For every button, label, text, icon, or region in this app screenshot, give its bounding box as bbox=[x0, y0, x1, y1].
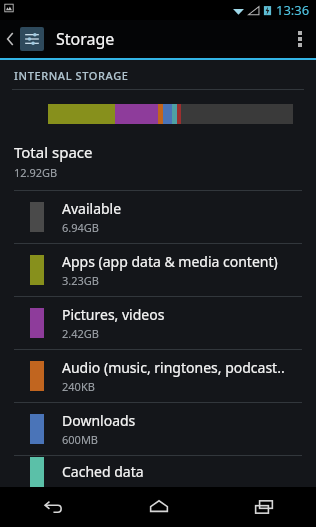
button[interactable]: Back bbox=[0, 20, 48, 58]
button[interactable]: Home bbox=[106, 487, 211, 527]
button[interactable]: Total space bbox=[0, 138, 316, 190]
staticText: Total space bbox=[14, 142, 93, 162]
staticText: Storage bbox=[56, 28, 115, 50]
staticText: 240KB bbox=[62, 379, 95, 394]
staticText: Downloads bbox=[62, 411, 136, 430]
other: Back bbox=[6, 31, 15, 47]
button[interactable]: Recent apps bbox=[211, 487, 316, 527]
button[interactable]: Cached data bbox=[0, 456, 316, 487]
staticText: 12.92GB bbox=[14, 165, 58, 180]
staticText: Pictures, videos bbox=[62, 305, 165, 324]
button[interactable]: More options bbox=[284, 20, 316, 58]
staticText: 600MB bbox=[62, 432, 99, 447]
staticText: Available bbox=[62, 199, 122, 218]
staticText: 3.23GB bbox=[62, 273, 99, 288]
staticText: 13:36 bbox=[276, 1, 310, 19]
button[interactable]: Pictures, videos bbox=[0, 297, 316, 349]
button[interactable]: Available bbox=[0, 191, 316, 243]
staticText: Apps (app data & media content) bbox=[62, 252, 278, 271]
button[interactable]: Back bbox=[0, 487, 106, 527]
staticText: Cached data bbox=[62, 462, 144, 481]
staticText: Audio (music, ringtones, podcast.. bbox=[62, 358, 285, 377]
button[interactable]: Apps (app data & media content) bbox=[0, 244, 316, 296]
button[interactable]: Audio (music, ringtones, podcast.. bbox=[0, 350, 316, 402]
staticText: 2.42GB bbox=[62, 326, 99, 341]
button[interactable]: Downloads bbox=[0, 403, 316, 455]
staticText: 6.94GB bbox=[62, 220, 99, 235]
staticText: INTERNAL STORAGE bbox=[14, 68, 129, 83]
